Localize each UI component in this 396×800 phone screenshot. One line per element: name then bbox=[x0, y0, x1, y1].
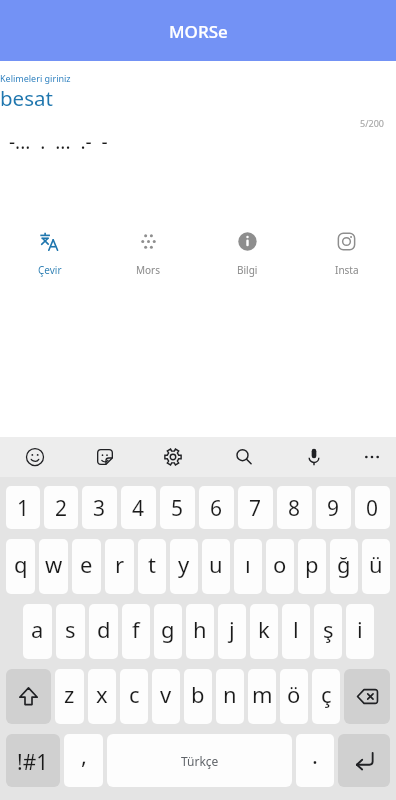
button[interactable]: Settings bbox=[151, 437, 195, 477]
button[interactable]: s bbox=[56, 604, 85, 659]
button[interactable]: 7 bbox=[238, 486, 273, 529]
staticText: ı bbox=[245, 549, 251, 579]
button[interactable]: u bbox=[202, 539, 230, 594]
button[interactable]: 8 bbox=[277, 486, 312, 529]
staticText: f bbox=[132, 614, 140, 644]
staticText: j bbox=[229, 614, 235, 644]
button[interactable]: 9 bbox=[316, 486, 351, 529]
button[interactable]: Backspace bbox=[344, 669, 390, 724]
button[interactable]: ş bbox=[314, 604, 342, 659]
staticText: q bbox=[14, 549, 28, 579]
button[interactable]: e bbox=[72, 539, 101, 594]
button[interactable]: g bbox=[154, 604, 182, 659]
button[interactable]: k bbox=[250, 604, 278, 659]
button[interactable]: ö bbox=[280, 669, 308, 724]
button[interactable]: Türkçe bbox=[107, 734, 292, 787]
staticText: 0 bbox=[366, 494, 379, 523]
staticText: y bbox=[178, 549, 190, 579]
button[interactable]: Çevir bbox=[0, 225, 99, 283]
staticText: p bbox=[305, 549, 319, 579]
button[interactable]: . bbox=[296, 734, 334, 787]
staticText: 5/200 bbox=[0, 117, 384, 129]
staticText: c bbox=[129, 679, 140, 709]
button[interactable]: v bbox=[152, 669, 180, 724]
button[interactable]: j bbox=[218, 604, 246, 659]
button[interactable]: f bbox=[122, 604, 150, 659]
button[interactable]: 0 bbox=[355, 486, 390, 529]
button[interactable]: t bbox=[138, 539, 166, 594]
button[interactable]: Bilgi bbox=[198, 225, 297, 283]
staticText: 9 bbox=[327, 494, 340, 523]
button[interactable]: l bbox=[282, 604, 310, 659]
button[interactable]: 1 bbox=[6, 486, 40, 529]
staticText: Mors bbox=[136, 263, 161, 277]
button[interactable]: z bbox=[55, 669, 84, 724]
button[interactable]: q bbox=[6, 539, 35, 594]
staticText: l bbox=[293, 614, 299, 644]
button[interactable]: Mors bbox=[99, 225, 198, 283]
staticText: o bbox=[273, 549, 287, 579]
button[interactable]: w bbox=[39, 539, 68, 594]
staticText: !#1 bbox=[17, 748, 49, 777]
button[interactable]: 4 bbox=[121, 486, 156, 529]
button[interactable]: p bbox=[298, 539, 326, 594]
button[interactable]: 2 bbox=[44, 486, 78, 529]
staticText: 8 bbox=[288, 494, 301, 523]
button[interactable]: , bbox=[64, 734, 103, 787]
button[interactable]: 6 bbox=[199, 486, 234, 529]
button[interactable]: Stickers bbox=[83, 437, 127, 477]
staticText: i bbox=[357, 614, 363, 644]
staticText: 4 bbox=[132, 494, 145, 523]
button[interactable]: 5 bbox=[160, 486, 195, 529]
staticText: Kelimeleri giriniz bbox=[0, 72, 71, 84]
button[interactable]: r bbox=[105, 539, 134, 594]
staticText: Çevir bbox=[38, 263, 62, 277]
staticText: MORSe bbox=[169, 20, 228, 43]
staticText: Türkçe bbox=[181, 753, 219, 769]
staticText: e bbox=[80, 549, 93, 579]
button[interactable]: ç bbox=[312, 669, 340, 724]
staticText: -... . ... .- - bbox=[9, 129, 108, 155]
staticText: k bbox=[258, 614, 270, 644]
button[interactable]: !#1 bbox=[6, 734, 60, 787]
button[interactable]: Voice input bbox=[292, 437, 336, 477]
button[interactable]: o bbox=[266, 539, 294, 594]
staticText: 1 bbox=[17, 494, 30, 523]
button[interactable]: c bbox=[120, 669, 148, 724]
staticText: ç bbox=[321, 679, 332, 709]
staticText: , bbox=[81, 740, 87, 770]
button[interactable]: Emoji bbox=[13, 437, 57, 477]
button[interactable]: x bbox=[88, 669, 116, 724]
button[interactable]: 3 bbox=[82, 486, 117, 529]
staticText: b bbox=[191, 679, 205, 709]
button[interactable]: d bbox=[89, 604, 118, 659]
staticText: w bbox=[45, 549, 63, 579]
staticText: Insta bbox=[335, 263, 359, 277]
button[interactable]: Insta bbox=[297, 225, 396, 283]
staticText: 3 bbox=[93, 494, 106, 523]
button[interactable]: m bbox=[248, 669, 276, 724]
staticText: s bbox=[65, 614, 76, 644]
button[interactable]: Shift bbox=[6, 669, 51, 724]
staticText: u bbox=[209, 549, 223, 579]
staticText: x bbox=[96, 679, 108, 709]
staticText: t bbox=[148, 549, 156, 579]
button[interactable]: a bbox=[23, 604, 52, 659]
button[interactable]: More options bbox=[350, 437, 394, 477]
button[interactable]: ğ bbox=[330, 539, 358, 594]
staticText: g bbox=[161, 614, 175, 644]
button[interactable]: y bbox=[170, 539, 198, 594]
button[interactable]: Enter bbox=[338, 734, 390, 787]
staticText: m bbox=[252, 679, 273, 709]
button[interactable]: Search bbox=[222, 437, 266, 477]
button[interactable]: ü bbox=[362, 539, 390, 594]
button[interactable]: ı bbox=[234, 539, 262, 594]
staticText: h bbox=[193, 614, 207, 644]
button[interactable]: h bbox=[186, 604, 214, 659]
staticText: 2 bbox=[55, 494, 68, 523]
staticText: d bbox=[97, 614, 111, 644]
staticText: a bbox=[31, 614, 44, 644]
button[interactable]: i bbox=[346, 604, 374, 659]
button[interactable]: n bbox=[216, 669, 244, 724]
button[interactable]: b bbox=[184, 669, 212, 724]
